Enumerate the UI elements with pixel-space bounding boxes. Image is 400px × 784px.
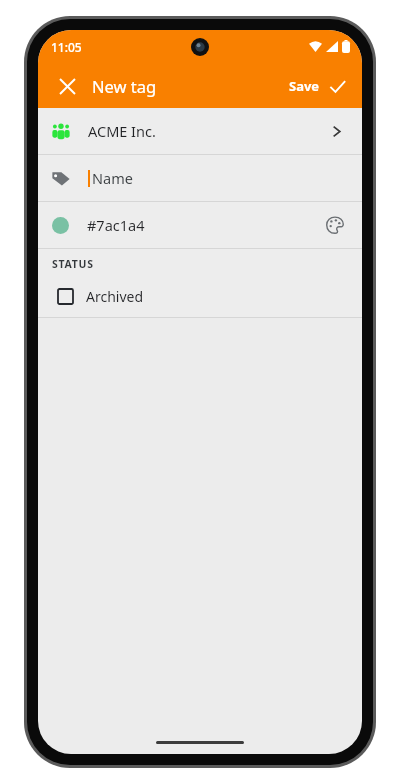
- button[interactable]: #7ac1a4: [38, 202, 362, 248]
- staticText: Name: [92, 168, 133, 188]
- staticText: STATUS: [52, 257, 94, 271]
- button[interactable]: Pick colour: [322, 212, 348, 238]
- staticText: ACME Inc.: [88, 121, 156, 141]
- staticText: Archived: [86, 287, 144, 306]
- staticText: #7ac1a4: [87, 215, 145, 235]
- staticText: Save: [289, 77, 320, 95]
- button[interactable]: Name: [38, 155, 362, 201]
- button[interactable]: ACME Inc.: [38, 108, 362, 154]
- button[interactable]: Archived: [38, 279, 362, 313]
- button[interactable]: Close: [50, 69, 84, 103]
- staticText: 11:05: [51, 39, 82, 55]
- button[interactable]: Save: [285, 71, 350, 101]
- other: Open: [324, 119, 348, 143]
- staticText: New tag: [92, 75, 157, 97]
